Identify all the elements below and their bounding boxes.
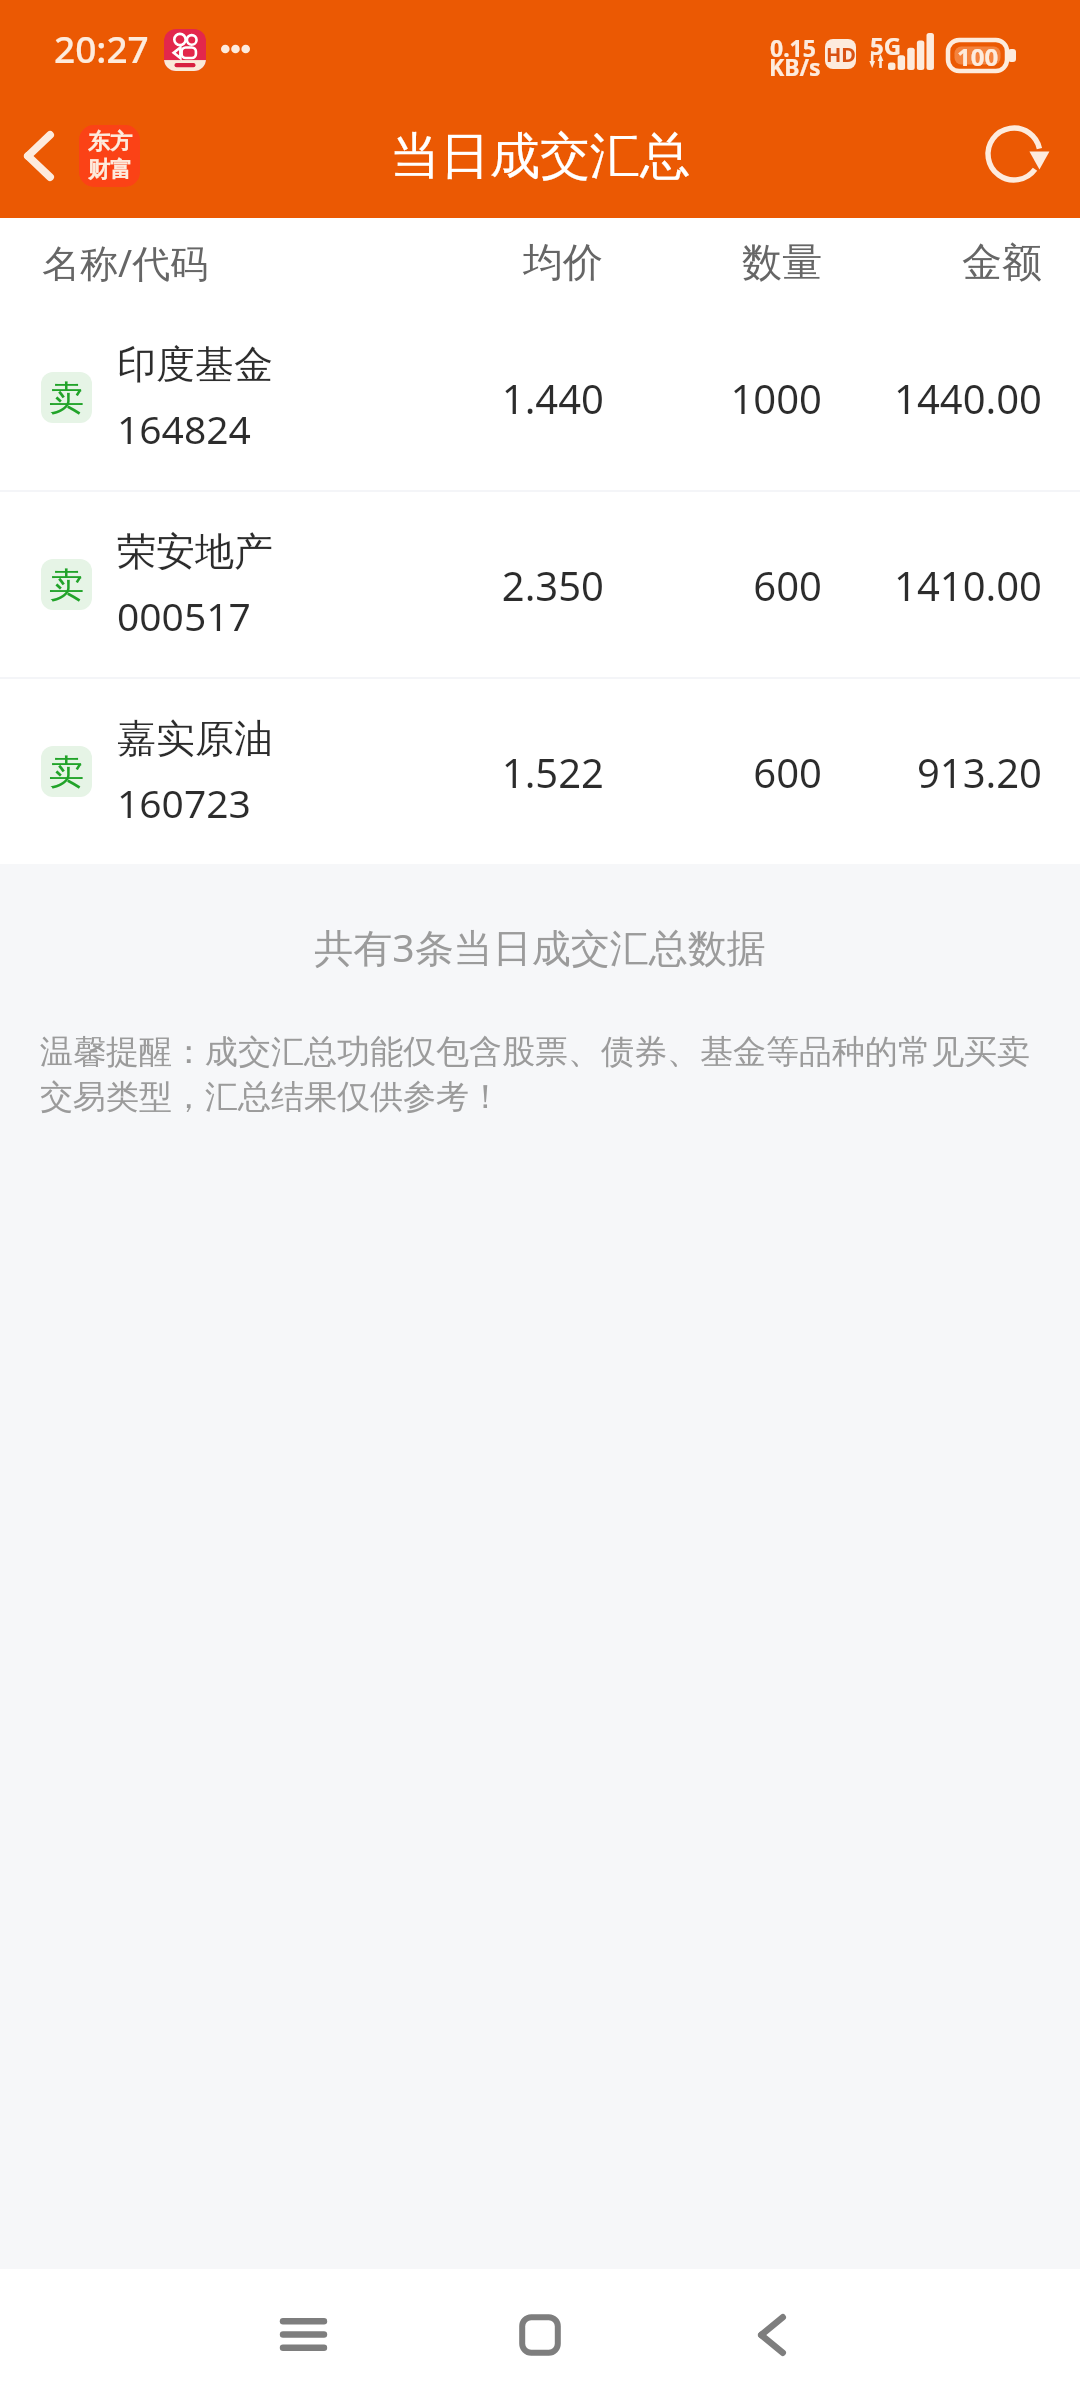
staticText: 100 xyxy=(957,40,999,71)
button[interactable]: Refresh xyxy=(985,121,1080,197)
button[interactable]: 卖 xyxy=(0,492,1080,677)
staticText: 2.350 xyxy=(392,558,604,612)
staticText: 20:27 xyxy=(54,23,149,73)
staticText: 荣安地产 xyxy=(117,527,273,576)
button[interactable]: Home xyxy=(420,2269,660,2400)
staticText: 卖 xyxy=(49,750,84,794)
staticText: 160723 xyxy=(117,776,251,829)
staticText: 共有3条当日成交汇总数据 xyxy=(0,920,1080,973)
staticText: 000517 xyxy=(117,589,251,642)
staticText: 财富 xyxy=(88,156,132,184)
staticText: 印度基金 xyxy=(117,340,273,389)
staticText: 1440.00 xyxy=(822,371,1042,425)
staticText: 温馨提醒：成交汇总功能仅包含股票、债券、基金等品种的常见买卖交易类型，汇总结果仅… xyxy=(40,1031,1042,1117)
staticText: 1.440 xyxy=(392,371,604,425)
staticText: 当日成交汇总 xyxy=(390,125,690,188)
staticText: 名称/代码 xyxy=(42,236,209,288)
button[interactable]: Back to 东方财富 xyxy=(0,117,158,195)
staticText: 600 xyxy=(604,558,822,612)
staticText: 数量 xyxy=(603,237,822,287)
staticText: 1410.00 xyxy=(822,558,1042,612)
staticText: KB/s xyxy=(769,51,821,82)
staticText: 5G xyxy=(870,29,902,62)
button[interactable]: Recents xyxy=(183,2269,423,2400)
button[interactable]: 卖 xyxy=(0,679,1080,864)
staticText: 1000 xyxy=(604,371,822,425)
staticText: 164824 xyxy=(117,402,251,455)
button[interactable]: 卖 xyxy=(0,305,1080,490)
staticText: 嘉实原油 xyxy=(117,714,273,763)
staticText: 1.522 xyxy=(392,745,604,799)
staticText: 均价 xyxy=(390,237,603,287)
staticText: 东方 xyxy=(88,128,132,156)
staticText: 600 xyxy=(604,745,822,799)
button[interactable]: Back xyxy=(652,2269,892,2400)
staticText: 卖 xyxy=(49,563,84,607)
staticText: 913.20 xyxy=(822,745,1042,799)
staticText: HD xyxy=(826,41,856,68)
staticText: 卖 xyxy=(49,376,84,420)
staticText: 金额 xyxy=(822,237,1042,287)
staticText: 0.15 xyxy=(770,32,816,63)
